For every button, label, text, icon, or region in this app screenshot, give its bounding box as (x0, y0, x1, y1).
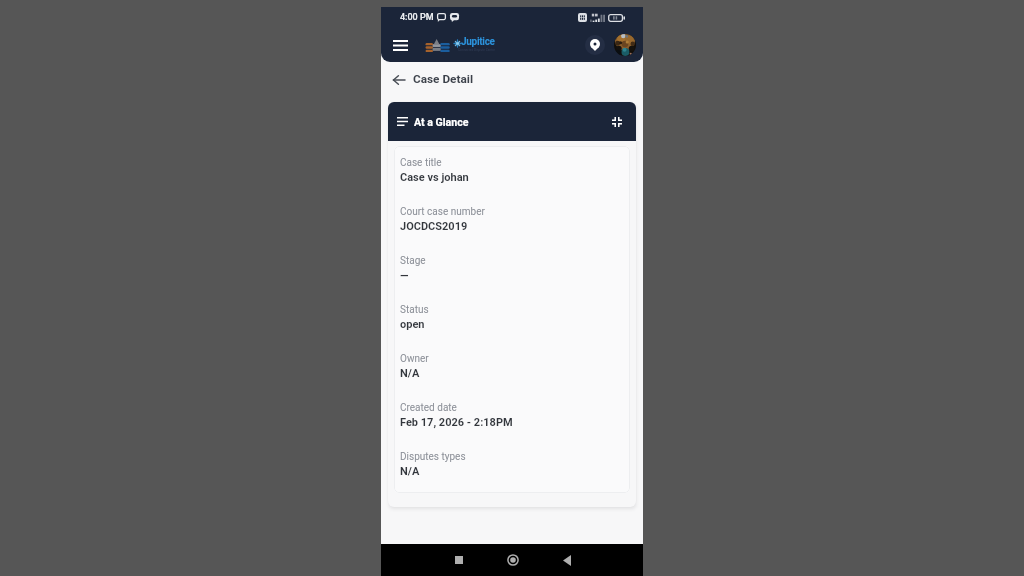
staticText: At a Glance (414, 116, 469, 128)
staticText: Connected Dispute Centre (458, 48, 495, 52)
button[interactable]: Collapse (610, 115, 623, 128)
staticText: 4:00 PM (400, 12, 434, 23)
button[interactable]: Menu (392, 37, 408, 53)
staticText: N/A (400, 465, 420, 478)
staticText: Jupitice (461, 36, 495, 48)
button[interactable]: Recents (443, 545, 474, 575)
button[interactable]: At a Glance (388, 102, 636, 141)
staticText: Court case number (400, 206, 485, 218)
staticText: Case Detail (413, 72, 474, 86)
staticText: JOCDCS2019 (400, 220, 468, 233)
staticText: Created date (400, 402, 457, 414)
staticText: Case title (400, 157, 442, 169)
button[interactable]: Location (585, 35, 605, 55)
button[interactable]: Home (497, 545, 528, 575)
staticText: Status (400, 304, 429, 316)
staticText: Owner (400, 353, 429, 365)
button[interactable]: Back (391, 72, 406, 87)
button[interactable]: Profile (614, 34, 636, 56)
staticText: N/A (400, 367, 420, 380)
button[interactable]: Back (551, 545, 582, 575)
staticText: Feb 17, 2026 - 2:18PM (400, 416, 513, 429)
staticText: open (400, 318, 425, 331)
staticText: Disputes types (400, 451, 466, 463)
staticText: Stage (400, 255, 426, 267)
staticText: Case vs johan (400, 171, 469, 184)
staticText: — (400, 269, 409, 282)
